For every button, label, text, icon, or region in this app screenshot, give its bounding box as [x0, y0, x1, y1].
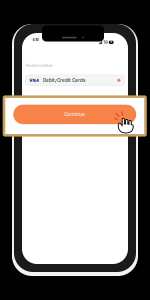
staticText: Debit/Credit Cards	[43, 77, 85, 83]
button[interactable]: Debit/Credit Cards	[25, 75, 124, 85]
staticText: 5G	[103, 40, 107, 44]
button[interactable]: Continue	[13, 105, 136, 124]
staticText: Payment method	[25, 64, 52, 67]
staticText: 4:10	[32, 38, 38, 42]
staticText: 72	[110, 41, 113, 44]
staticText: Continue	[64, 112, 85, 117]
